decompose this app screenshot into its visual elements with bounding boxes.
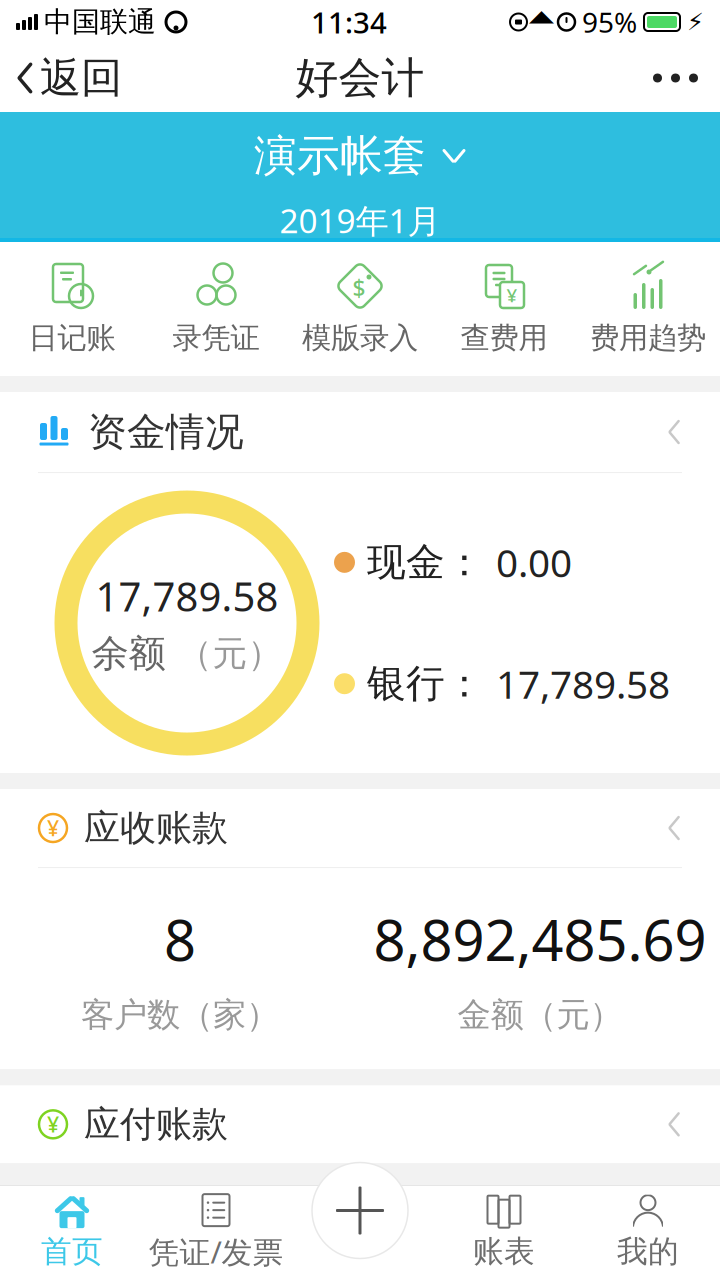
staticText: 2019年1月 [279, 198, 440, 242]
button[interactable]: 首页 [0, 1185, 144, 1280]
staticText: 余额 [91, 631, 165, 677]
staticText: 现金： [367, 539, 484, 586]
staticText: 客户数（家） [81, 994, 279, 1035]
staticText: 8,892,485.69 [373, 902, 706, 976]
staticText: 费用趋势 [590, 320, 706, 356]
staticText: 日记账 [28, 320, 115, 356]
staticText: 查费用 [460, 320, 547, 356]
staticText: 账表 [473, 1233, 535, 1270]
staticText: 应收账款 [84, 806, 228, 850]
staticText: 好会计 [295, 52, 424, 104]
staticText: 我的 [617, 1233, 679, 1270]
staticText: 8 [164, 902, 196, 976]
button[interactable]: 演示帐套 [0, 112, 720, 242]
staticText: ◤ [534, 9, 551, 35]
staticText: 应付账款 [84, 1102, 228, 1146]
button[interactable]: 录凭证 [144, 256, 288, 362]
button[interactable]: 更多 [631, 44, 720, 112]
staticText: 首页 [41, 1233, 103, 1270]
staticText: （元） [177, 632, 282, 675]
staticText: 中国联通 [44, 5, 156, 39]
staticText: 演示帐套 [254, 130, 426, 182]
staticText: ¥ [47, 1110, 59, 1138]
staticText: 返回 [40, 53, 122, 103]
button[interactable]: 费用趋势 [576, 256, 720, 362]
button[interactable]: 账表 [432, 1185, 576, 1280]
staticText: ⚡︎ [687, 8, 704, 36]
staticText: 17,789.58 [95, 569, 278, 623]
staticText: 模版录入 [302, 320, 418, 356]
staticText: 资金情况 [88, 408, 244, 456]
staticText: $ [352, 273, 365, 303]
staticText: ¥ [47, 814, 59, 842]
button[interactable]: $ [288, 256, 432, 362]
staticText: 0.00 [496, 537, 572, 588]
button[interactable]: 凭证/发票 [144, 1185, 288, 1280]
button[interactable]: ¥ [432, 256, 576, 362]
button[interactable]: 日记账 [0, 256, 144, 362]
staticText: 银行： [367, 660, 484, 707]
staticText: 17,789.58 [496, 658, 670, 709]
staticText: 11:34 [311, 2, 387, 41]
staticText: 金额（元） [457, 994, 622, 1035]
button[interactable]: ¥ [0, 1085, 720, 1163]
button[interactable]: 返回 [0, 44, 138, 112]
button[interactable]: 新增 [305, 1155, 415, 1265]
button[interactable]: 我的 [576, 1185, 720, 1280]
staticText: ¥ [506, 283, 517, 307]
staticText: 录凭证 [172, 320, 259, 356]
button[interactable]: 资金情况 [0, 392, 720, 472]
button[interactable]: ¥ [0, 789, 720, 867]
staticText: 95% [582, 3, 637, 41]
staticText: 凭证/发票 [148, 1231, 283, 1272]
